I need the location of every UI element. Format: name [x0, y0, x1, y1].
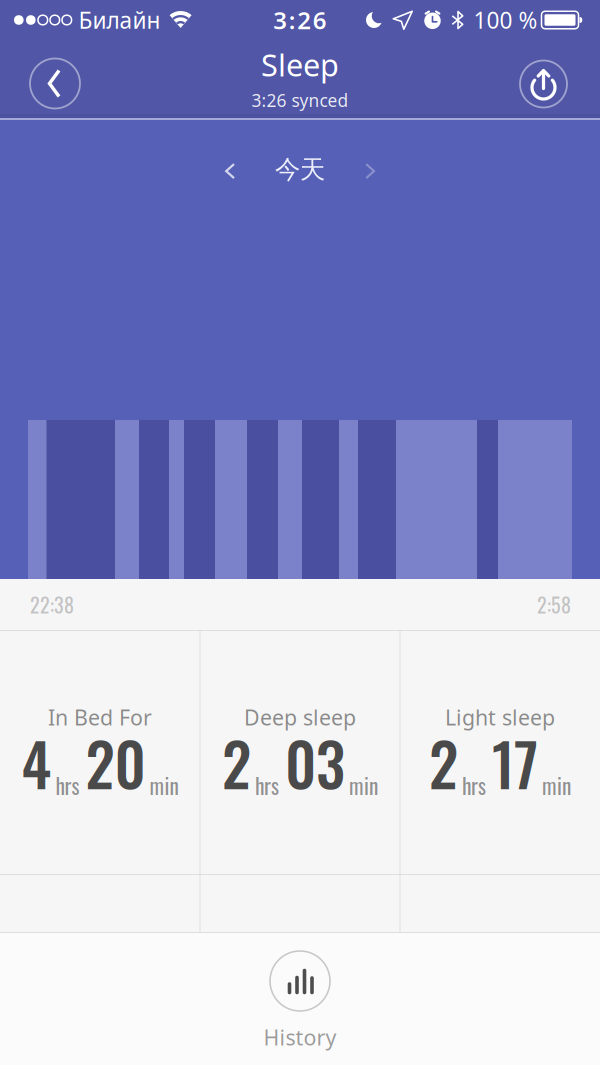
staticText: 03: [285, 719, 345, 806]
staticText: hrs: [255, 770, 279, 801]
staticText: 100 %: [473, 5, 537, 35]
staticText: Sleep: [261, 44, 339, 85]
staticText: min: [149, 770, 178, 801]
button[interactable]: Share: [520, 60, 567, 107]
staticText: 2:58: [537, 590, 571, 619]
staticText: hrs: [55, 770, 79, 801]
staticText: min: [542, 770, 571, 801]
staticText: 2: [429, 719, 458, 806]
staticText: Light sleep: [445, 703, 555, 731]
staticText: 3:26: [273, 4, 327, 36]
button[interactable]: Previous day: [225, 163, 235, 179]
staticText: 今天: [275, 154, 325, 185]
staticText: 22:38: [30, 590, 74, 619]
staticText: In Bed For: [48, 703, 152, 731]
button[interactable]: Next day: [365, 163, 375, 179]
staticText: 3:26 synced: [251, 89, 348, 112]
staticText: History: [263, 1023, 336, 1051]
staticText: 4: [21, 719, 51, 806]
staticText: Билайн: [79, 5, 161, 35]
button[interactable]: History: [263, 951, 336, 1051]
staticText: Deep sleep: [244, 703, 356, 731]
staticText: 17: [492, 719, 538, 806]
button[interactable]: Back: [30, 58, 80, 108]
staticText: hrs: [462, 770, 486, 801]
staticText: 2: [222, 719, 251, 806]
staticText: min: [349, 770, 378, 801]
staticText: 20: [85, 719, 145, 806]
